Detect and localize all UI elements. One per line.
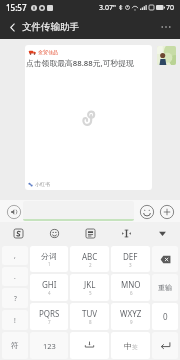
button[interactable]: GHI [30,274,68,301]
button[interactable]: 0 [152,303,178,330]
button[interactable]: 金贸佳品 [25,45,152,190]
staticText: 70 [166,3,175,13]
staticText: 8 [89,319,92,325]
staticText: TUV [82,308,98,319]
button[interactable]: Switch input language [111,332,150,359]
staticText: 0 [163,311,168,322]
button[interactable]: ABC [70,246,109,272]
staticText: DEF [123,251,138,262]
staticText: 6 [130,290,133,296]
staticText: 重输 [158,283,172,292]
staticText: 7 [48,319,51,325]
button[interactable]: WXYZ [111,303,150,330]
staticText: 3 [129,262,132,268]
staticText: GHI [42,279,57,290]
button[interactable]: Emoji [36,222,72,245]
staticText: 15:57 [6,2,27,13]
button[interactable]: Input method [0,222,36,245]
staticText: ! [14,316,16,325]
button[interactable]: MNO [111,274,150,301]
button[interactable]: Hide keyboard [144,222,180,245]
staticText: ABC [82,251,98,262]
button[interactable]: Backspace [152,246,178,272]
staticText: 3.07" [99,3,116,13]
button[interactable]: Clipboard [72,222,108,245]
staticText: 小红书 [35,181,50,187]
staticText: 符 [11,341,19,350]
button[interactable]: Profile picture [157,46,176,65]
button[interactable]: ? [2,288,28,308]
button[interactable]: Space [70,332,109,359]
staticText: 分词 [41,251,57,261]
button[interactable]: Cursor [108,222,144,245]
button[interactable]: 分词 [30,246,68,272]
button[interactable]: Enter [152,332,178,359]
button[interactable]: ! [2,310,28,330]
button[interactable]: PQRS [30,303,68,330]
button[interactable]: 重输 [152,274,178,301]
staticText: , [14,251,16,260]
button[interactable]: , [2,246,28,265]
staticText: 1 [48,261,51,267]
staticText: MNO [121,279,141,290]
staticText: 5 [89,290,92,296]
button[interactable] [23,201,134,221]
staticText: JKL [84,279,96,290]
staticText: 英 [132,344,138,351]
staticText: PQRS [39,308,60,319]
button[interactable]: Back [3,18,21,36]
staticText: 点击领取最高88.88元,可秒提现 [26,58,134,69]
button[interactable]: More options [157,18,175,36]
staticText: 123 [43,341,56,351]
staticText: 9 [130,319,133,325]
button[interactable]: Voice input [5,203,22,220]
staticText: . [14,272,16,281]
button[interactable]: JKL [70,274,109,301]
staticText: 4 [48,290,51,296]
button[interactable]: 123 [30,332,68,359]
staticText: 2 [89,262,92,268]
staticText: 金贸佳品 [38,49,58,55]
staticText: 中 [124,341,132,351]
button[interactable]: 符 [2,332,28,359]
staticText: ? [14,294,17,303]
staticText: 文件传输助手 [22,21,79,33]
staticText: WXYZ [120,308,142,319]
button[interactable]: More functions [158,203,175,220]
button[interactable]: DEF [111,246,150,272]
button[interactable]: TUV [70,303,109,330]
button[interactable]: Emoji [138,203,155,220]
